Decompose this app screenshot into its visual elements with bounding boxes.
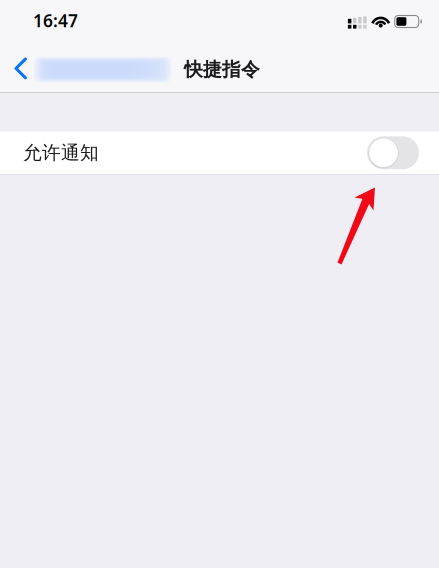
button[interactable]: 允许通知: [0, 131, 439, 174]
staticText: 允许通知: [23, 141, 99, 164]
staticText: 16:47: [33, 9, 78, 32]
staticText: 快捷指令: [184, 58, 260, 81]
button[interactable]: Back: [0, 44, 179, 92]
